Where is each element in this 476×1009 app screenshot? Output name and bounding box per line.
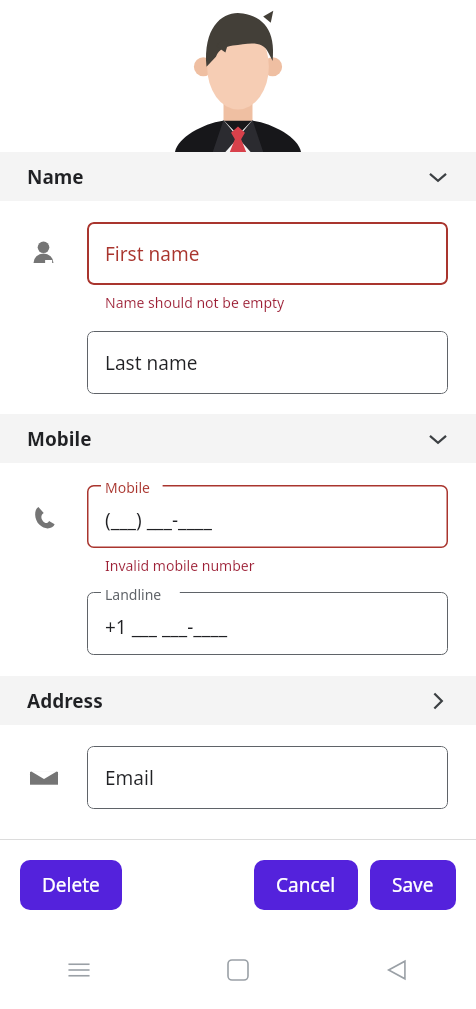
button[interactable]: Cancel xyxy=(254,860,358,910)
button[interactable]: Address xyxy=(0,676,476,725)
staticText: Email xyxy=(105,765,154,791)
button[interactable]: Email xyxy=(87,746,448,809)
button[interactable]: Mobile xyxy=(0,414,476,463)
staticText: First name xyxy=(105,241,200,267)
button[interactable]: Mobile xyxy=(87,485,448,548)
button[interactable]: Home xyxy=(158,930,317,1009)
staticText: Address xyxy=(27,688,103,714)
staticText: Cancel xyxy=(276,872,336,898)
staticText: Name should not be empty xyxy=(105,293,285,312)
button[interactable]: Landline xyxy=(87,592,448,655)
staticText: Delete xyxy=(42,872,100,898)
button[interactable]: Back xyxy=(317,930,476,1009)
staticText: Save xyxy=(392,872,434,898)
staticText: Landline xyxy=(105,585,162,604)
button[interactable]: Name xyxy=(0,152,476,201)
button[interactable]: Last name xyxy=(87,331,448,394)
other: Contact name xyxy=(30,240,57,267)
other: Email xyxy=(30,764,58,792)
staticText: (___) ___-____ xyxy=(105,507,212,533)
staticText: Invalid mobile number xyxy=(105,556,255,575)
staticText: +1 ___ ___-____ xyxy=(105,614,228,640)
staticText: Mobile xyxy=(27,426,92,452)
button[interactable]: Delete xyxy=(20,860,122,910)
button[interactable]: First name xyxy=(87,222,448,285)
other: Phone xyxy=(30,503,58,531)
staticText: Mobile xyxy=(105,478,150,497)
staticText: Name xyxy=(27,164,84,190)
staticText: Last name xyxy=(105,350,198,376)
button[interactable]: Recent apps xyxy=(0,930,158,1009)
button[interactable]: Save xyxy=(370,860,456,910)
